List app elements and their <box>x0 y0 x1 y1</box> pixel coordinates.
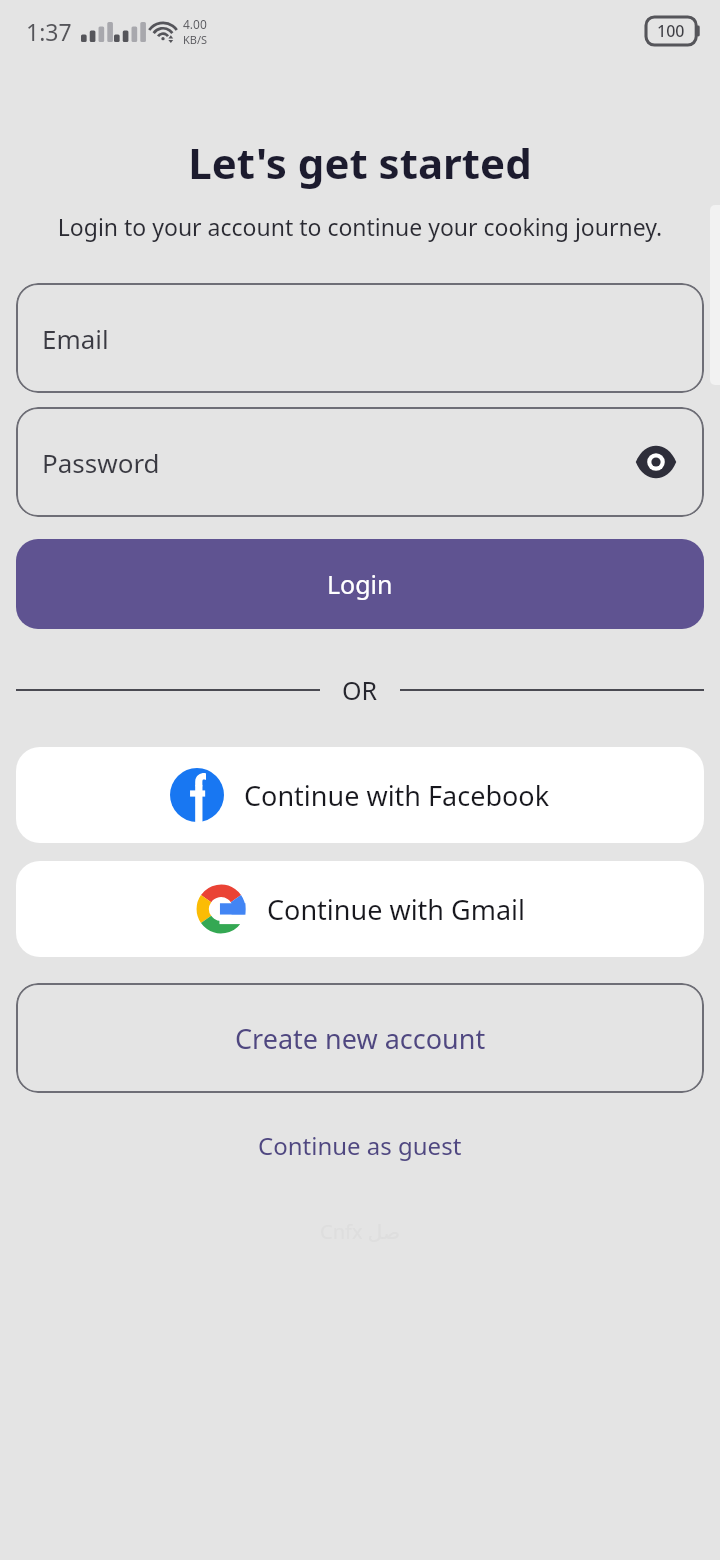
staticText: Email <box>42 321 109 356</box>
button[interactable]: Login <box>16 539 704 629</box>
staticText: Continue as guest <box>258 1129 462 1162</box>
staticText: Continue with Facebook <box>244 777 550 814</box>
staticText: 1:37 <box>26 16 72 47</box>
staticText: Login to your account to continue your c… <box>28 211 692 242</box>
staticText: Create new account <box>235 1020 486 1057</box>
staticText: 4.00 <box>183 16 207 32</box>
button[interactable]: Create new account <box>16 983 704 1093</box>
staticText: KB/S <box>183 32 208 47</box>
staticText: Continue with Gmail <box>267 891 526 928</box>
staticText: Login <box>327 567 393 601</box>
button[interactable]: Password <box>16 407 704 517</box>
staticText: Let's get started <box>0 134 720 191</box>
button[interactable]: Continue with Facebook <box>16 747 704 843</box>
button[interactable]: Show password <box>630 436 682 488</box>
button[interactable]: Continue with Gmail <box>16 861 704 957</box>
button[interactable]: Email <box>16 283 704 393</box>
staticText: Password <box>42 445 160 480</box>
staticText: 100 <box>657 20 685 42</box>
button[interactable]: Continue as guest <box>0 1121 720 1170</box>
staticText: OR <box>342 673 378 707</box>
